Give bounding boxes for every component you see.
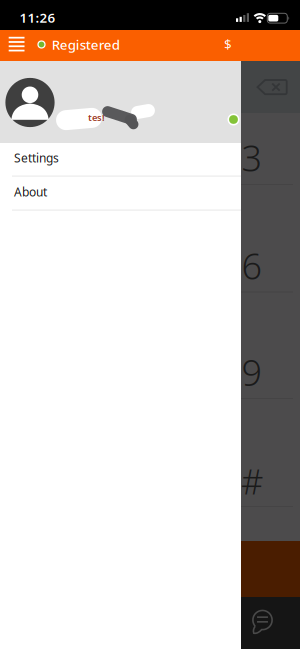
button[interactable]: 3	[224, 129, 280, 185]
staticText: 6	[241, 242, 262, 289]
staticText: tes!	[88, 111, 105, 124]
button[interactable]: Chat	[252, 610, 273, 634]
staticText: About	[14, 184, 47, 200]
button[interactable]: 9	[224, 344, 280, 400]
staticText: $	[224, 35, 232, 53]
button[interactable]: About	[14, 175, 241, 208]
button[interactable]: Settings	[14, 141, 241, 174]
button[interactable]: Balance	[217, 32, 239, 56]
staticText: 3	[241, 134, 262, 181]
button[interactable]: 6	[224, 237, 280, 293]
button[interactable]: #	[224, 453, 280, 509]
staticText: 11:26	[19, 9, 55, 26]
button[interactable]: Delete	[257, 79, 287, 95]
staticText: Registered	[52, 36, 120, 53]
button[interactable]: Menu	[9, 37, 24, 52]
button[interactable]: Account	[0, 61, 241, 143]
staticText: Settings	[14, 150, 59, 166]
staticText: 9	[241, 348, 262, 396]
button[interactable]: Call	[0, 541, 300, 597]
button[interactable]: Registered	[37, 32, 147, 56]
staticText: #	[241, 458, 263, 504]
